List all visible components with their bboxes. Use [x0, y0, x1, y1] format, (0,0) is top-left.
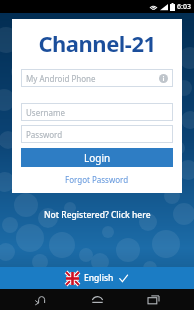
- staticText: My Android Phone: [26, 73, 159, 84]
- staticText: Login: [84, 151, 111, 165]
- staticText: Username: [26, 107, 65, 118]
- button[interactable]: Recent apps: [138, 289, 168, 310]
- staticText: 6:03: [177, 2, 191, 12]
- staticText: English: [84, 272, 114, 284]
- staticText: Not Registered? Click here: [44, 209, 151, 221]
- other: Selected: [119, 274, 128, 283]
- button[interactable]: My Android Phone: [21, 69, 173, 87]
- staticText: Channel-21: [21, 28, 173, 58]
- staticText: Forgot Password: [65, 174, 129, 185]
- button[interactable]: English: [0, 267, 194, 289]
- button[interactable]: Forgot Password: [21, 174, 173, 185]
- button[interactable]: Home: [82, 289, 112, 310]
- other: Information: [159, 74, 168, 83]
- button[interactable]: Not Registered? Click here: [0, 209, 194, 221]
- button[interactable]: Password: [21, 125, 173, 143]
- button[interactable]: Back: [26, 289, 56, 310]
- staticText: Password: [26, 129, 63, 140]
- button[interactable]: Login: [21, 148, 173, 167]
- button[interactable]: Username: [21, 103, 173, 121]
